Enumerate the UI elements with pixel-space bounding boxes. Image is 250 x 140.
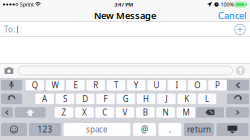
- staticText: return: [187, 124, 211, 135]
- button[interactable]: Add contact: [234, 23, 246, 35]
- staticText: F: [103, 93, 107, 104]
- button[interactable]: L: [198, 93, 216, 104]
- staticText: U: [154, 80, 160, 90]
- staticText: .: [169, 124, 171, 135]
- staticText: Y: [134, 80, 139, 90]
- button[interactable]: G: [116, 93, 135, 104]
- staticText: K: [184, 93, 189, 104]
- button[interactable]: H: [137, 93, 155, 104]
- button[interactable]: P: [208, 80, 227, 90]
- staticText: M: [182, 107, 189, 118]
- button[interactable]: X: [75, 107, 94, 118]
- button[interactable]: T: [107, 80, 125, 90]
- staticText: A: [42, 93, 47, 104]
- button[interactable]: R: [86, 80, 105, 90]
- button[interactable]: Redo: [227, 93, 249, 104]
- staticText: D: [82, 93, 88, 104]
- button[interactable]: Z: [55, 107, 73, 118]
- button[interactable]: D: [76, 93, 94, 104]
- staticText: C: [102, 107, 107, 118]
- staticText: J: [165, 93, 167, 104]
- button[interactable]: N: [156, 107, 175, 118]
- button[interactable]: return: [184, 123, 214, 136]
- button[interactable]: Delete: [227, 80, 249, 90]
- button[interactable]: Dismiss keyboard: [216, 123, 248, 136]
- staticText: H: [143, 93, 149, 104]
- button[interactable]: F: [96, 93, 115, 104]
- staticText: Z: [62, 107, 67, 118]
- staticText: New Message: [94, 9, 156, 22]
- button[interactable]: Emoji: [1, 123, 27, 136]
- staticText: G: [123, 93, 129, 104]
- button[interactable]: V: [116, 107, 134, 118]
- button[interactable]: O: [188, 80, 206, 90]
- button[interactable]: Q: [25, 80, 44, 90]
- button[interactable]: Hide: [226, 107, 249, 118]
- button[interactable]: Camera: [4, 66, 14, 75]
- staticText: R: [93, 80, 98, 90]
- button[interactable]: J: [157, 93, 176, 104]
- staticText: I: [175, 80, 178, 90]
- button[interactable]: Y: [127, 80, 146, 90]
- staticText: Cancel: [218, 9, 246, 22]
- button[interactable]: A: [35, 93, 54, 104]
- staticText: 3:47 PM: [114, 1, 133, 8]
- button[interactable]: 123: [29, 123, 61, 136]
- button[interactable]: C: [95, 107, 114, 118]
- staticText: Q: [32, 80, 38, 90]
- button[interactable]: S: [56, 93, 74, 104]
- button[interactable]: E: [66, 80, 85, 90]
- staticText: S: [63, 93, 67, 104]
- staticText: @: [141, 124, 148, 135]
- staticText: X: [82, 107, 87, 118]
- staticText: N: [163, 107, 169, 118]
- staticText: L: [205, 93, 209, 104]
- staticText: W: [52, 80, 59, 90]
- button[interactable]: W: [46, 80, 64, 90]
- staticText: 123: [37, 124, 52, 135]
- button[interactable]: @: [133, 123, 156, 136]
- button[interactable]: U: [147, 80, 166, 90]
- button[interactable]: Cancel: [214, 7, 250, 24]
- staticText: E: [73, 80, 77, 90]
- button[interactable]: Dictate: [1, 80, 22, 90]
- staticText: Sprint: [20, 1, 34, 8]
- staticText: space: [86, 124, 108, 135]
- staticText: B: [143, 107, 148, 118]
- button[interactable]: Undo: [1, 93, 22, 104]
- button[interactable]: K: [177, 93, 196, 104]
- staticText: 100%: [220, 1, 233, 8]
- button[interactable]: Shift: [15, 107, 46, 118]
- button[interactable]: Delete: [196, 107, 224, 118]
- staticText: V: [122, 107, 127, 118]
- button[interactable]: .: [158, 123, 181, 136]
- button[interactable]: B: [136, 107, 155, 118]
- button[interactable]: M: [177, 107, 195, 118]
- button[interactable]: space: [63, 123, 130, 136]
- staticText: O: [194, 80, 200, 90]
- button[interactable]: More: [1, 107, 13, 118]
- staticText: P: [215, 80, 220, 90]
- staticText: T: [114, 80, 118, 90]
- button[interactable]: I: [168, 80, 186, 90]
- button[interactable]: Send: [235, 65, 246, 76]
- staticText: To:: [4, 24, 15, 35]
